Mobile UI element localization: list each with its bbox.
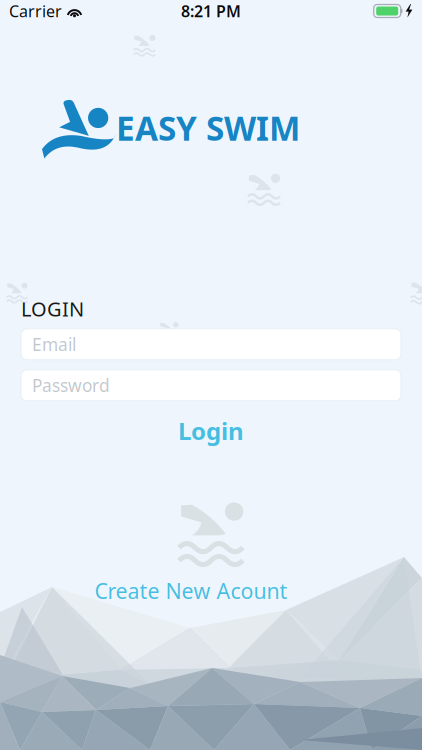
staticText: Login bbox=[178, 415, 244, 447]
staticText: Carrier bbox=[9, 0, 62, 22]
staticText: LOGIN bbox=[21, 295, 84, 322]
staticText: Create New Acount bbox=[94, 577, 287, 605]
staticText: Email bbox=[32, 333, 76, 356]
staticText: 8:21 PM bbox=[181, 0, 241, 22]
staticText: EASY SWIM bbox=[116, 106, 300, 150]
button[interactable]: Email bbox=[21, 329, 401, 360]
button[interactable]: Create New Acount bbox=[0, 577, 422, 605]
staticText: Password bbox=[32, 374, 110, 397]
button[interactable]: Password bbox=[21, 370, 401, 401]
button[interactable]: Login bbox=[0, 417, 422, 445]
